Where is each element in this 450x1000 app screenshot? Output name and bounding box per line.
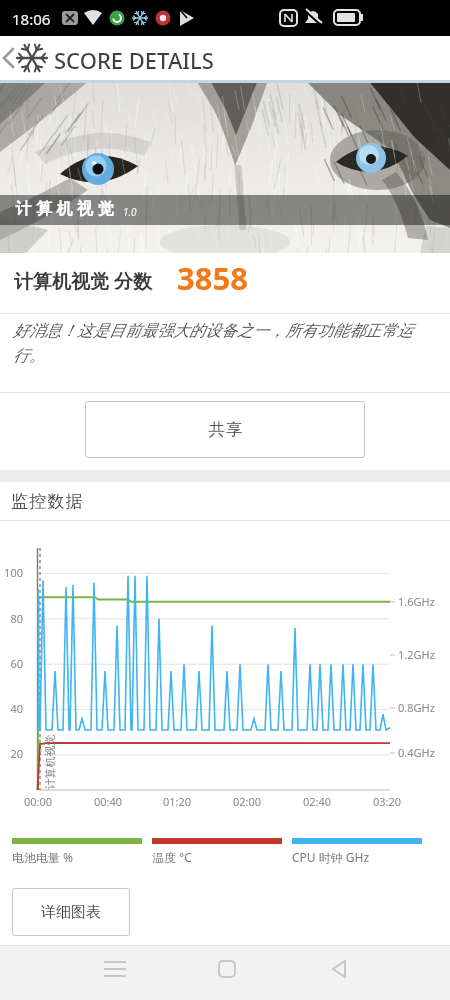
staticText: SCORE DETAILS <box>54 45 214 75</box>
staticText: 01:20 <box>163 794 192 809</box>
staticText: 100 <box>4 565 23 580</box>
staticText: 计算机视觉 <box>13 199 116 219</box>
staticText: 共享 <box>208 419 243 440</box>
button[interactable]: 共享 <box>85 401 365 458</box>
staticText: 02:00 <box>233 794 262 809</box>
staticText: 0.8GHz <box>398 700 435 715</box>
staticText: 监控数据 <box>11 491 84 512</box>
staticText: 温度 °C <box>152 849 192 865</box>
staticText: 20 <box>10 746 23 761</box>
staticText: 60 <box>10 656 23 671</box>
staticText: 计算机视觉 <box>42 734 56 789</box>
button[interactable] <box>316 947 362 993</box>
staticText: 80 <box>10 611 23 626</box>
staticText: 行。 <box>13 346 45 366</box>
staticText: 18:06 <box>12 9 51 29</box>
staticText: 00:00 <box>24 794 53 809</box>
staticText: 40 <box>10 701 23 716</box>
staticText: 1.6GHz <box>398 594 435 609</box>
button[interactable] <box>92 947 138 993</box>
staticText: CPU 时钟 GHz <box>292 849 370 865</box>
staticText: 详细图表 <box>41 903 101 922</box>
button[interactable]: 详细图表 <box>12 888 130 936</box>
staticText: 1.0 <box>123 205 137 219</box>
staticText: 电池电量 % <box>12 849 74 865</box>
staticText: 02:40 <box>303 794 332 809</box>
staticText: 1.2GHz <box>398 647 435 662</box>
staticText: 00:40 <box>94 794 123 809</box>
button[interactable] <box>204 947 250 993</box>
staticText: 好消息！这是目前最强大的设备之一，所有功能都正常运 <box>13 321 413 341</box>
staticText: 3858 <box>177 257 248 299</box>
staticText: 计算机视觉 分数 <box>14 268 152 294</box>
staticText: 0.4GHz <box>398 745 435 760</box>
staticText: 03:20 <box>373 794 402 809</box>
button[interactable] <box>0 36 60 80</box>
